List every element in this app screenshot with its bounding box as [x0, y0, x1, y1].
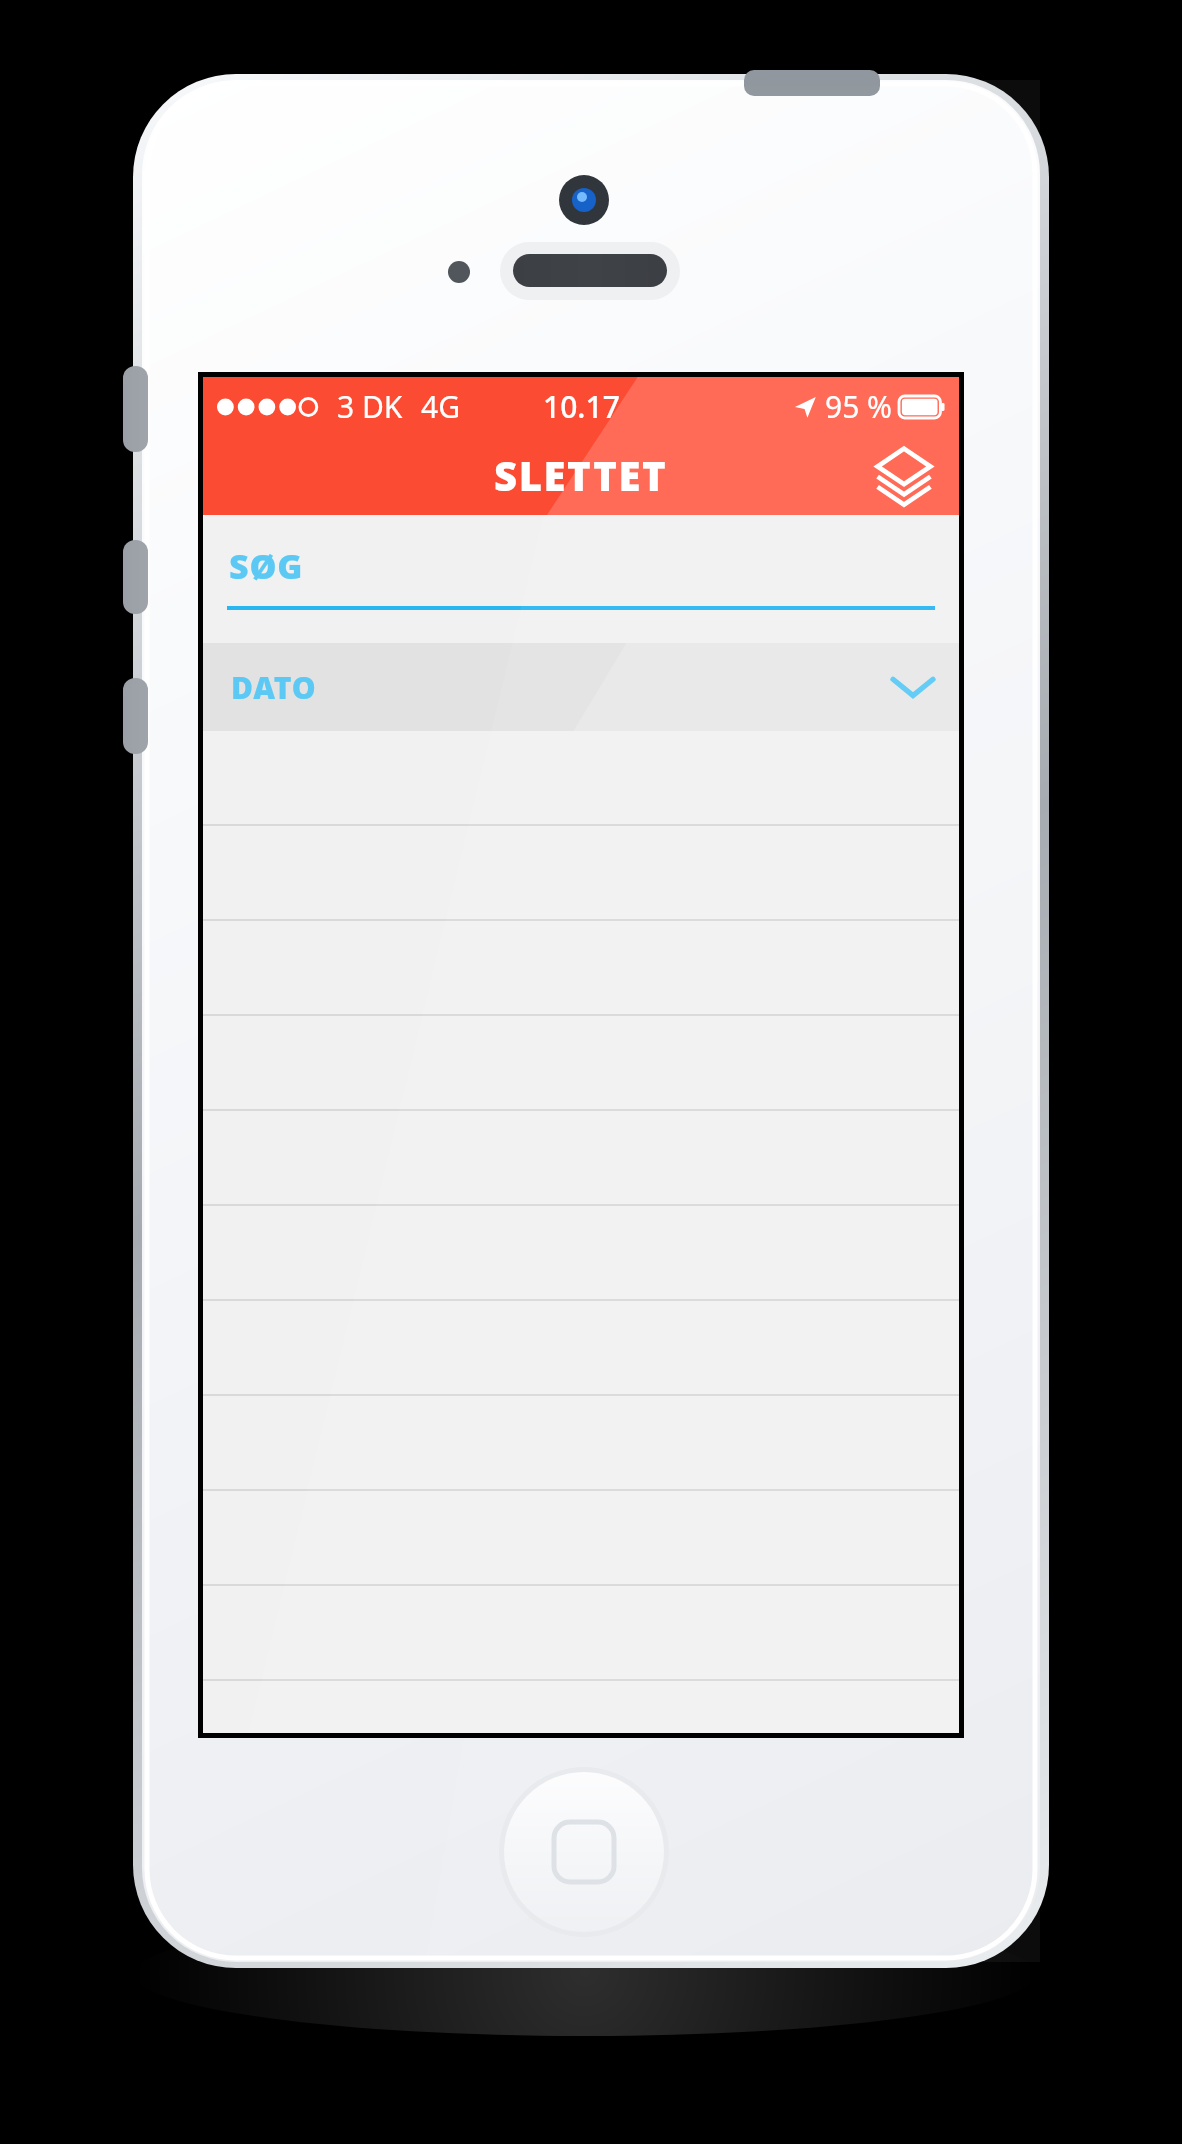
button[interactable]: DATO: [203, 643, 959, 731]
staticText: 3 DK: [337, 386, 403, 427]
staticText: DATO: [231, 667, 317, 708]
staticText: 10.17: [543, 386, 620, 427]
staticText: 95 %: [825, 386, 893, 427]
staticText: SØG: [229, 543, 304, 589]
staticText: 4G: [421, 386, 460, 427]
button[interactable]: SØG: [203, 515, 959, 643]
button[interactable]: Layers: [871, 442, 937, 508]
staticText: SLETTET: [494, 448, 668, 502]
